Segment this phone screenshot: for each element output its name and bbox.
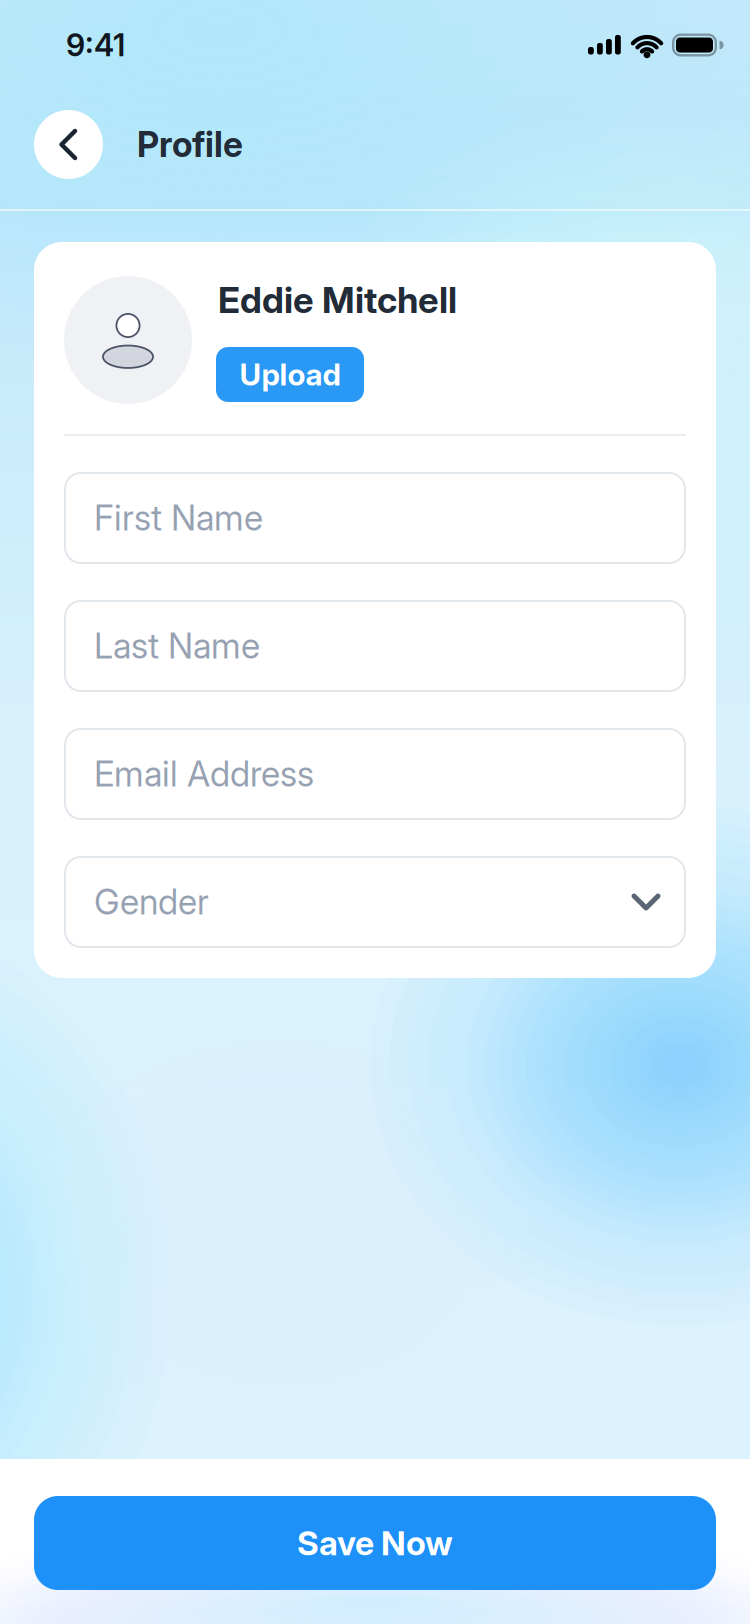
staticText: Upload (239, 356, 340, 393)
staticText: Save Now (297, 1523, 453, 1563)
staticText: 9:41 (66, 26, 125, 63)
button[interactable]: Upload (216, 347, 364, 402)
button[interactable]: Back (34, 110, 103, 179)
staticText: Profile (137, 123, 243, 165)
staticText: Last Name (94, 625, 260, 667)
staticText: Email Address (94, 753, 314, 795)
button[interactable]: Email Address (64, 728, 686, 820)
staticText: Gender (94, 881, 209, 923)
button[interactable]: First Name (64, 472, 686, 564)
button[interactable]: Save Now (34, 1496, 716, 1590)
staticText: First Name (94, 497, 263, 539)
button[interactable]: Gender (64, 856, 686, 948)
staticText: Eddie Mitchell (218, 278, 457, 322)
button[interactable]: Last Name (64, 600, 686, 692)
